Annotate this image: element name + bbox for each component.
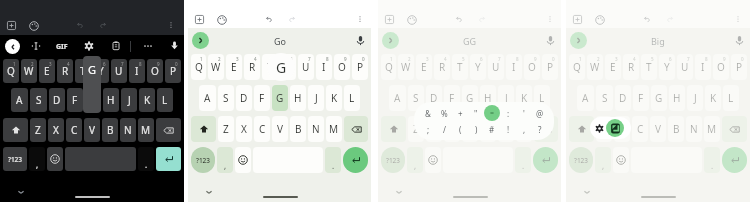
button[interactable]: P bbox=[165, 59, 181, 83]
button[interactable]: D bbox=[426, 85, 442, 111]
button[interactable]: Redo bbox=[99, 21, 107, 29]
button[interactable]: Voice input bbox=[355, 35, 366, 46]
button[interactable]: O bbox=[334, 54, 350, 80]
button[interactable]: Shift bbox=[191, 116, 216, 142]
button[interactable]: X bbox=[48, 118, 64, 142]
button[interactable]: Shift bbox=[569, 116, 594, 142]
button[interactable]: ?123 bbox=[191, 147, 215, 173]
button[interactable]: M bbox=[138, 118, 154, 142]
button[interactable]: ) bbox=[468, 121, 484, 137]
button[interactable]: Z bbox=[596, 116, 612, 142]
button[interactable]: Shift bbox=[381, 116, 406, 142]
button[interactable]: Backspace bbox=[534, 116, 558, 142]
button[interactable]: Q bbox=[191, 54, 206, 80]
button[interactable]: T bbox=[262, 54, 278, 80]
button[interactable]: = bbox=[484, 105, 500, 121]
button[interactable]: C bbox=[66, 118, 82, 142]
button[interactable]: D bbox=[49, 88, 65, 112]
button[interactable]: # bbox=[484, 121, 500, 137]
button[interactable]: S bbox=[218, 85, 234, 111]
button[interactable]: M bbox=[704, 116, 720, 142]
button[interactable]: Y bbox=[280, 54, 296, 80]
button[interactable]: ; bbox=[420, 121, 436, 137]
button[interactable]: ? bbox=[532, 121, 548, 137]
button[interactable]: Add bbox=[573, 15, 582, 24]
button[interactable]: U bbox=[298, 54, 314, 80]
button[interactable]: ( bbox=[452, 121, 468, 137]
button[interactable]: B bbox=[290, 116, 306, 142]
button[interactable]: S bbox=[596, 85, 613, 111]
button[interactable]: Undo bbox=[265, 15, 273, 23]
button[interactable]: Q bbox=[381, 54, 396, 80]
button[interactable]: : bbox=[500, 105, 516, 121]
button[interactable]: Redo bbox=[288, 15, 296, 23]
button[interactable]: Theme bbox=[29, 21, 39, 31]
button[interactable]: Z bbox=[408, 116, 424, 142]
button[interactable]: Enter bbox=[722, 147, 747, 173]
button[interactable]: Y bbox=[659, 54, 675, 80]
button[interactable]: Settings bbox=[595, 124, 604, 133]
button[interactable]: E bbox=[39, 59, 55, 83]
button[interactable]: J bbox=[308, 85, 324, 111]
button[interactable]: % bbox=[436, 105, 452, 121]
button[interactable]: Hide keyboard bbox=[16, 187, 26, 197]
button[interactable]: E bbox=[416, 54, 432, 80]
button[interactable]: M bbox=[326, 116, 342, 142]
button[interactable]: U bbox=[677, 54, 693, 80]
button[interactable]: " bbox=[468, 105, 484, 121]
button[interactable]: , bbox=[516, 121, 532, 137]
button[interactable]: A bbox=[577, 85, 594, 111]
button[interactable]: G bbox=[272, 85, 288, 111]
button[interactable]: W bbox=[208, 54, 224, 80]
button[interactable]: F bbox=[254, 85, 270, 111]
button[interactable]: Redo bbox=[478, 15, 486, 23]
button[interactable]: Backspace bbox=[156, 118, 181, 142]
button[interactable]: & bbox=[420, 105, 436, 121]
button[interactable]: Backspace bbox=[722, 116, 747, 142]
button[interactable]: Q bbox=[569, 54, 585, 80]
button[interactable]: N bbox=[120, 118, 136, 142]
button[interactable]: H bbox=[103, 88, 119, 112]
button[interactable]: Hide keyboard bbox=[582, 187, 592, 197]
button[interactable]: M bbox=[516, 116, 532, 142]
button[interactable]: Z bbox=[30, 118, 46, 142]
button[interactable]: Add bbox=[7, 21, 16, 30]
button[interactable]: ! bbox=[500, 121, 516, 137]
button[interactable]: L bbox=[723, 85, 739, 111]
button[interactable]: J bbox=[498, 85, 514, 111]
button[interactable]: Enter bbox=[533, 147, 558, 173]
button[interactable]: N bbox=[498, 116, 514, 142]
button[interactable]: Undo bbox=[76, 21, 84, 29]
button[interactable]: O bbox=[524, 54, 540, 80]
button[interactable]: O bbox=[713, 54, 729, 80]
button[interactable]: X bbox=[426, 116, 442, 142]
button[interactable]: GIF bbox=[56, 42, 68, 52]
button[interactable]: F bbox=[67, 88, 83, 112]
button[interactable]: Theme bbox=[217, 15, 227, 25]
button[interactable]: W bbox=[21, 59, 37, 83]
button[interactable]: F bbox=[633, 85, 649, 111]
button[interactable]: Emoji bbox=[235, 147, 251, 173]
button[interactable]: I bbox=[695, 54, 711, 80]
button[interactable]: R bbox=[623, 54, 639, 80]
button[interactable]: Hide keyboard bbox=[204, 187, 214, 197]
button[interactable]: X bbox=[614, 116, 630, 142]
button[interactable]: Undo bbox=[643, 15, 651, 23]
button[interactable]: B bbox=[102, 118, 118, 142]
button[interactable]: E bbox=[226, 54, 242, 80]
button[interactable]: V bbox=[462, 116, 478, 142]
button[interactable]: Emoji bbox=[47, 147, 63, 171]
button[interactable]: T bbox=[641, 54, 657, 80]
button[interactable]: ?123 bbox=[3, 147, 27, 171]
button[interactable]: More options bbox=[546, 15, 554, 23]
button[interactable]: Enter bbox=[343, 147, 368, 173]
button[interactable]: V bbox=[84, 118, 100, 142]
button[interactable]: Space bbox=[65, 147, 136, 171]
button[interactable]: J bbox=[687, 85, 703, 111]
button[interactable]: Y bbox=[470, 54, 486, 80]
button[interactable]: A bbox=[389, 85, 406, 111]
